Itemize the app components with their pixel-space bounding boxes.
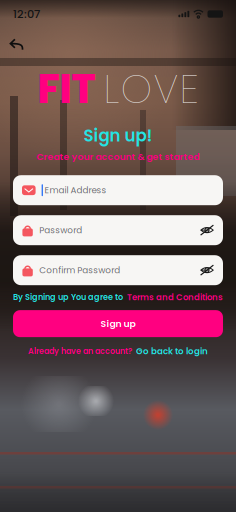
staticText: Create your account & get started: [36, 150, 199, 163]
staticText: Email Address: [44, 184, 106, 196]
button[interactable]: Password: [13, 215, 223, 245]
staticText: By Signing up You agree to: [13, 291, 123, 303]
button[interactable]: Go back to login: [136, 345, 208, 357]
staticText: LOVE: [103, 61, 198, 117]
staticText: Terms and Conditions: [127, 291, 223, 303]
button[interactable]: Back: [0, 34, 36, 55]
staticText: Sign up!: [83, 124, 152, 147]
button[interactable]: Terms and Conditions: [127, 291, 223, 303]
button[interactable]: Sign up: [13, 310, 223, 337]
staticText: Already have an account?: [28, 346, 132, 357]
staticText: Sign up: [100, 317, 135, 330]
staticText: FIT: [37, 61, 95, 117]
staticText: Confirm Password: [39, 264, 120, 276]
staticText: 12:07: [13, 6, 40, 22]
button[interactable]: Email Address: [13, 175, 223, 205]
button[interactable]: Confirm Password: [13, 255, 223, 285]
staticText: Go back to login: [136, 345, 208, 357]
staticText: Password: [39, 224, 82, 236]
